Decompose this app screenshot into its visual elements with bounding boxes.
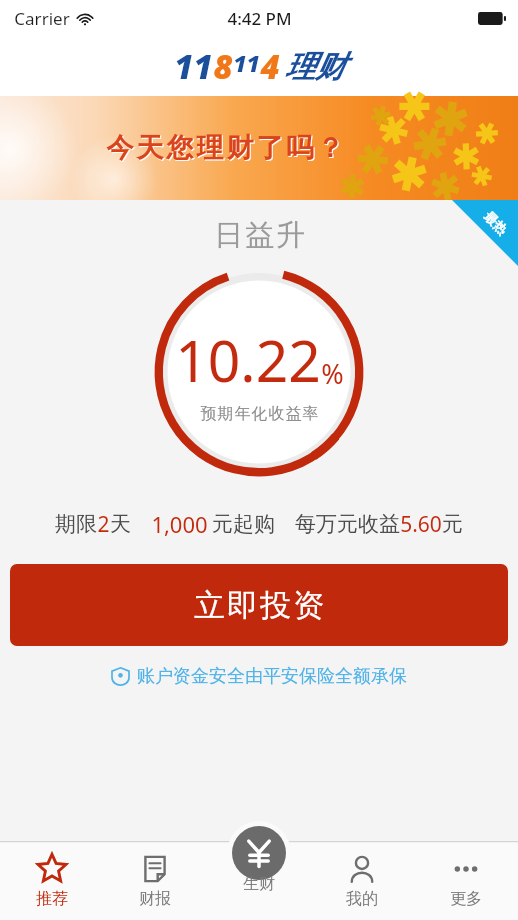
staticText: 5.60 <box>400 510 442 539</box>
staticText: 4:42 PM <box>227 7 292 30</box>
staticText: % <box>321 355 344 392</box>
button[interactable]: 我的 <box>310 841 414 920</box>
staticText: 我的 <box>346 889 378 909</box>
staticText: 财报 <box>139 889 171 909</box>
staticText: 11 <box>174 44 213 89</box>
staticText: 10.22 <box>175 321 321 399</box>
staticText: 更多 <box>450 889 482 909</box>
staticText: 账户资金安全由平安保险全额承保 <box>137 665 407 688</box>
staticText: 1,000 <box>151 509 208 539</box>
staticText: 2 <box>97 510 110 539</box>
staticText: 11 <box>233 47 260 78</box>
staticText: 预期年化收益率 <box>200 404 319 424</box>
staticText: 生财 <box>243 874 275 894</box>
button[interactable]: 今天您理财了吗？ <box>0 96 518 200</box>
staticText: 理财 <box>285 48 345 86</box>
button[interactable]: 最热 标签 <box>452 200 518 266</box>
staticText: 元起购 <box>212 511 275 537</box>
staticText: 今天您理财了吗？ <box>105 131 345 165</box>
staticText: Carrier <box>14 7 70 30</box>
button[interactable]: 立即投资 <box>10 564 508 646</box>
staticText: 天 <box>110 511 131 537</box>
button[interactable]: 生财 <box>211 825 307 904</box>
staticText: 8 <box>213 44 233 89</box>
button[interactable]: 更多 <box>414 841 518 920</box>
staticText: 4 <box>260 44 280 89</box>
button[interactable]: 财报 <box>103 841 206 920</box>
button[interactable]: 账户资金安全由平安保险全额承保 <box>111 665 407 688</box>
button[interactable]: 推荐 <box>0 841 103 920</box>
staticText: 最热 <box>481 208 511 238</box>
staticText: 今天您理财了吗？ <box>106 132 346 166</box>
staticText: 推荐 <box>36 889 68 909</box>
staticText: 日益升 <box>213 217 306 254</box>
staticText: 期限 <box>55 511 97 537</box>
staticText: 立即投资 <box>193 586 325 625</box>
staticText: 每万元收益 <box>295 511 400 537</box>
staticText: 元 <box>442 511 463 537</box>
